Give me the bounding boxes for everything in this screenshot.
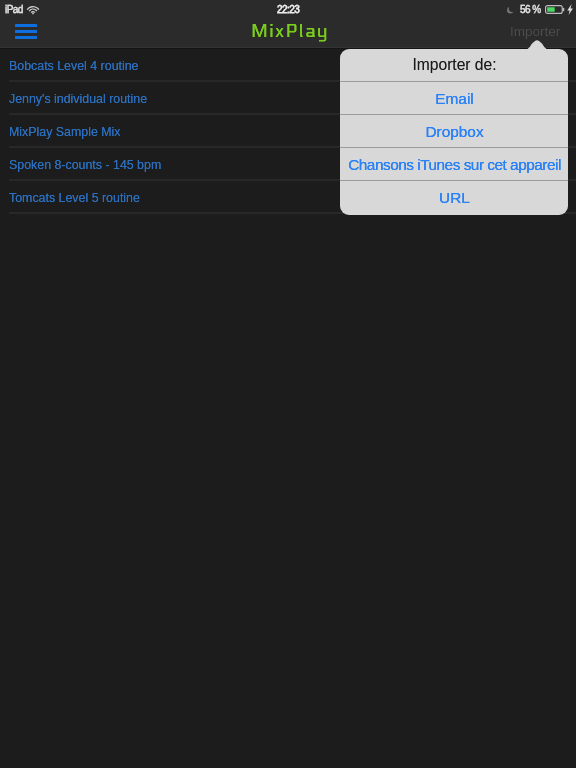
- button[interactable]: URL: [340, 181, 568, 213]
- staticText: 22:23: [277, 4, 300, 15]
- button[interactable]: Menu: [7, 17, 45, 45]
- staticText: URL: [439, 189, 470, 206]
- button[interactable]: Chansons iTunes sur cet appareil: [340, 148, 568, 180]
- staticText: Importer de:: [412, 56, 497, 73]
- button[interactable]: Dropbox: [340, 115, 568, 147]
- staticText: MixPlay Sample Mix: [9, 125, 121, 139]
- button[interactable]: Bobcats Level 4 routine: [0, 48, 576, 81]
- staticText: Importer de:: [412, 56, 497, 73]
- button[interactable]: Jenny's individual routine: [0, 81, 576, 114]
- staticText: Email: [435, 90, 474, 107]
- staticText: Chansons iTunes sur cet appareil: [348, 156, 561, 173]
- staticText: iPad: [5, 4, 23, 15]
- button[interactable]: MixPlay Sample Mix: [0, 114, 576, 147]
- staticText: Dropbox: [425, 123, 484, 140]
- staticText: Bobcats Level 4 routine: [9, 59, 139, 73]
- button[interactable]: Importer: [510, 24, 561, 39]
- button[interactable]: Tomcats Level 5 routine: [0, 180, 576, 213]
- staticText: Tomcats Level 5 routine: [9, 191, 140, 205]
- staticText: MixPlay: [251, 20, 329, 42]
- staticText: Jenny's individual routine: [9, 92, 148, 106]
- staticText: URL: [439, 189, 470, 206]
- staticText: Email: [435, 90, 474, 107]
- staticText: Chansons iTunes sur cet appareil: [348, 156, 561, 173]
- staticText: Importer: [510, 24, 561, 39]
- staticText: MixPlay Sample Mix: [9, 125, 121, 139]
- button[interactable]: Importer de:: [340, 49, 568, 81]
- staticText: Dropbox: [425, 123, 484, 140]
- staticText: Spoken 8-counts - 145 bpm: [9, 158, 162, 172]
- staticText: Tomcats Level 5 routine: [9, 191, 140, 205]
- button[interactable]: Email: [340, 82, 568, 114]
- button[interactable]: Spoken 8-counts - 145 bpm: [0, 147, 576, 180]
- staticText: Spoken 8-counts - 145 bpm: [9, 158, 162, 172]
- staticText: 56 %: [520, 4, 541, 15]
- staticText: Jenny's individual routine: [9, 92, 148, 106]
- staticText: MixPlay: [251, 20, 329, 42]
- staticText: Bobcats Level 4 routine: [9, 59, 139, 73]
